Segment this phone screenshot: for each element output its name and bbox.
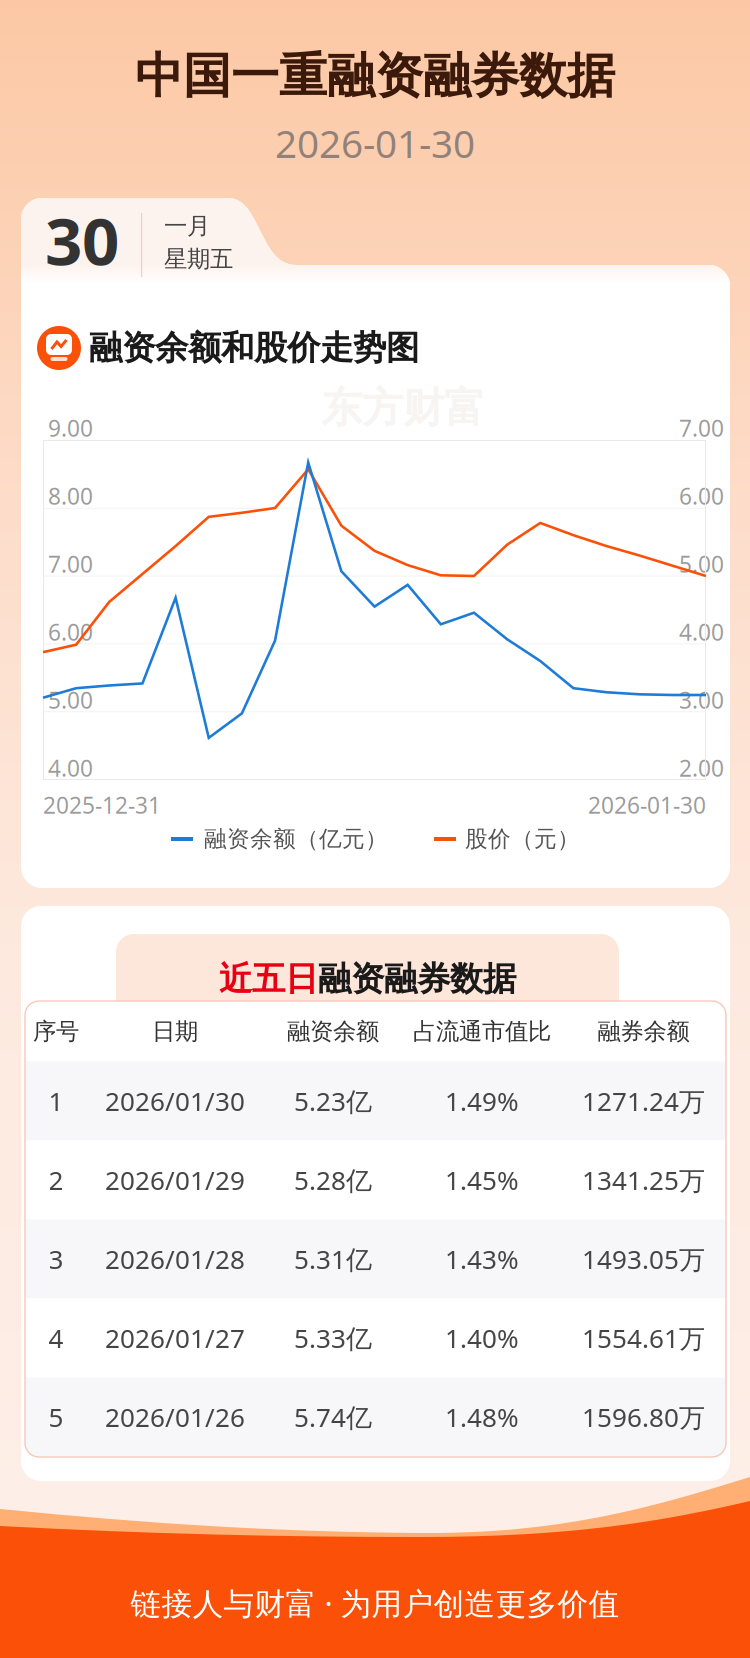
staticText: 2026/01/27: [105, 1320, 245, 1356]
staticText: 2026-01-30: [275, 117, 475, 169]
staticText: 2026/01/29: [105, 1162, 245, 1198]
staticText: 1493.05万: [582, 1241, 705, 1277]
staticText: 5: [48, 1399, 63, 1435]
staticText: 1: [48, 1083, 63, 1119]
staticText: 1341.25万: [582, 1162, 705, 1198]
staticText: 5.23亿: [294, 1083, 372, 1119]
staticText: 2026/01/30: [105, 1083, 245, 1119]
staticText: 1.45%: [445, 1162, 519, 1198]
staticText: 5.00: [679, 549, 724, 579]
staticText: 股价（元）: [465, 825, 580, 853]
staticText: 星期五: [164, 244, 233, 274]
staticText: 1.48%: [445, 1399, 519, 1435]
staticText: 2025-12-31: [43, 790, 161, 820]
staticText: 4: [48, 1320, 63, 1356]
staticText: 2026/01/26: [105, 1399, 245, 1435]
staticText: 近五日: [219, 958, 318, 1000]
staticText: 8.00: [48, 481, 93, 511]
staticText: 1.40%: [445, 1320, 519, 1356]
staticText: 30: [45, 195, 119, 284]
staticText: 1554.61万: [582, 1320, 705, 1356]
staticText: 一月: [164, 211, 210, 241]
staticText: 东方财富: [321, 1235, 485, 1287]
staticText: 融券余额: [597, 1017, 689, 1046]
staticText: 4.00: [48, 753, 93, 783]
staticText: 5.31亿: [294, 1241, 372, 1277]
staticText: 9.00: [48, 413, 93, 443]
staticText: 链接人与财富 · 为用户创造更多价值: [130, 1582, 619, 1624]
staticText: 占流通市值比: [413, 1017, 551, 1046]
staticText: 5.33亿: [294, 1320, 372, 1356]
staticText: 5.00: [48, 685, 93, 715]
staticText: 6.00: [679, 481, 724, 511]
staticText: 融资余额（亿元）: [204, 825, 388, 853]
staticText: 7.00: [48, 549, 93, 579]
staticText: 融资融券数据: [318, 958, 516, 1000]
staticText: 5.74亿: [294, 1399, 372, 1435]
staticText: 中国一重融资融券数据: [135, 46, 615, 106]
staticText: 3.00: [679, 685, 724, 715]
staticText: 东方财富: [321, 382, 485, 434]
staticText: 融资余额: [287, 1017, 379, 1046]
staticText: 6.00: [48, 617, 93, 647]
staticText: 7.00: [679, 413, 724, 443]
staticText: 2: [48, 1162, 63, 1198]
staticText: 1271.24万: [582, 1083, 705, 1119]
staticText: 序号: [33, 1017, 79, 1046]
staticText: 1.49%: [445, 1083, 519, 1119]
staticText: 4.00: [679, 617, 724, 647]
staticText: 5.28亿: [294, 1162, 372, 1198]
staticText: 2026-01-30: [588, 790, 706, 820]
staticText: 2026/01/28: [105, 1241, 245, 1277]
staticText: 3: [48, 1241, 63, 1277]
staticText: 1596.80万: [582, 1399, 705, 1435]
staticText: 2.00: [679, 753, 724, 783]
staticText: 日期: [152, 1017, 198, 1046]
staticText: 融资余额和股价走势图: [89, 327, 419, 369]
staticText: 1.43%: [445, 1241, 519, 1277]
